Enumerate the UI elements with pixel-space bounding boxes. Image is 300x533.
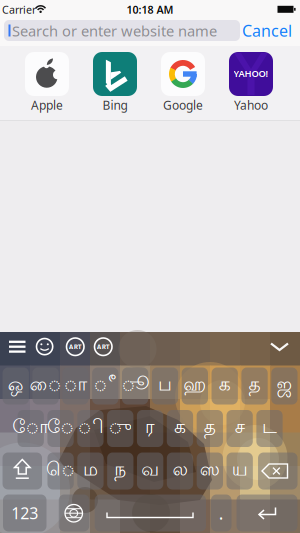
staticText: ே [47,417,74,439]
staticText: ோ [12,417,49,439]
button[interactable]: வ [137,452,163,489]
staticText: ட [262,417,277,439]
staticText: ந [114,460,126,482]
staticText: ஸ [200,460,220,482]
staticText: ஜ [276,375,292,397]
staticText: Search or enter website name [12,21,217,40]
button[interactable]: ெ [47,452,74,489]
button[interactable]: ய [227,452,253,489]
staticText: த [249,375,261,397]
staticText: ர [145,417,155,439]
button[interactable]: ட [256,410,283,447]
staticText: 10:18 AM [126,2,173,17]
button[interactable]: Dismiss keyboard [0,0,300,533]
staticText: ி [77,417,103,439]
button[interactable]: . [211,494,231,531]
button[interactable]: ே [47,410,74,447]
button[interactable]: க [212,367,238,404]
staticText: ை [30,375,62,397]
staticText: ஹ [183,375,206,397]
button[interactable]: ஜ [271,367,298,404]
button[interactable]: ி [77,410,103,447]
button[interactable]: Emoji [0,0,300,533]
button[interactable]: ை [32,367,59,404]
staticText: Cancel [242,20,292,41]
button[interactable]: ூ [122,367,148,404]
staticText: ART [69,342,82,351]
staticText: ம [83,460,98,482]
button[interactable]: ச [226,410,253,447]
staticText: ய [232,460,248,482]
button[interactable]: த [241,367,268,404]
button[interactable]: Next keyboard [59,494,89,531]
staticText: ீ [93,375,117,397]
button[interactable]: ர [137,410,163,447]
button[interactable]: Google [161,52,205,96]
button[interactable]: Art themes [0,0,300,533]
staticText: ச [235,417,245,439]
button[interactable]: ீ [92,367,118,404]
button[interactable]: ு [107,410,133,447]
button[interactable]: ஸ [197,452,223,489]
button[interactable]: Art stickers [0,0,300,533]
staticText: க [174,417,186,439]
staticText: த [204,417,216,439]
button[interactable]: Cancel [235,18,299,42]
button[interactable]: Menu [0,0,300,533]
button[interactable]: Shift [3,452,42,489]
button[interactable]: Delete [258,452,298,489]
button[interactable]: ோ [17,410,44,447]
staticText: ா [63,375,87,397]
button[interactable]: ம [77,452,104,489]
staticText: 123 [11,502,38,524]
button[interactable]: Yahoo [229,52,273,96]
button[interactable]: Return [237,494,297,531]
staticText: ஒ [8,375,24,397]
button[interactable]: ந [107,452,133,489]
button[interactable]: Bing [93,52,137,96]
button[interactable]: ப [152,367,178,404]
button[interactable]: ஹ [182,367,208,404]
staticText: YAHOO! [233,67,268,80]
button[interactable]: Apple [25,52,69,96]
staticText: ூ [121,375,149,397]
staticText: Apple [31,97,63,113]
button[interactable]: 123 [3,494,46,531]
staticText: Carrier [2,2,36,17]
staticText: ART [97,342,110,351]
staticText: வ [141,460,159,482]
staticText: ப [158,375,172,397]
button[interactable]: Space [95,494,206,531]
staticText: ல [172,460,187,482]
button[interactable]: Search or enter website name [4,20,240,41]
button[interactable]: ல [167,452,193,489]
staticText: க [219,375,231,397]
staticText: Bing [102,97,127,113]
button[interactable]: க [167,410,193,447]
staticText: Google [163,97,203,113]
staticText: ு [108,417,132,439]
button[interactable]: ா [62,367,89,404]
staticText: ெ [46,460,75,482]
staticText: . [219,501,224,524]
button[interactable]: த [197,410,223,447]
staticText: Yahoo [234,97,268,113]
button[interactable]: ஒ [3,367,29,404]
